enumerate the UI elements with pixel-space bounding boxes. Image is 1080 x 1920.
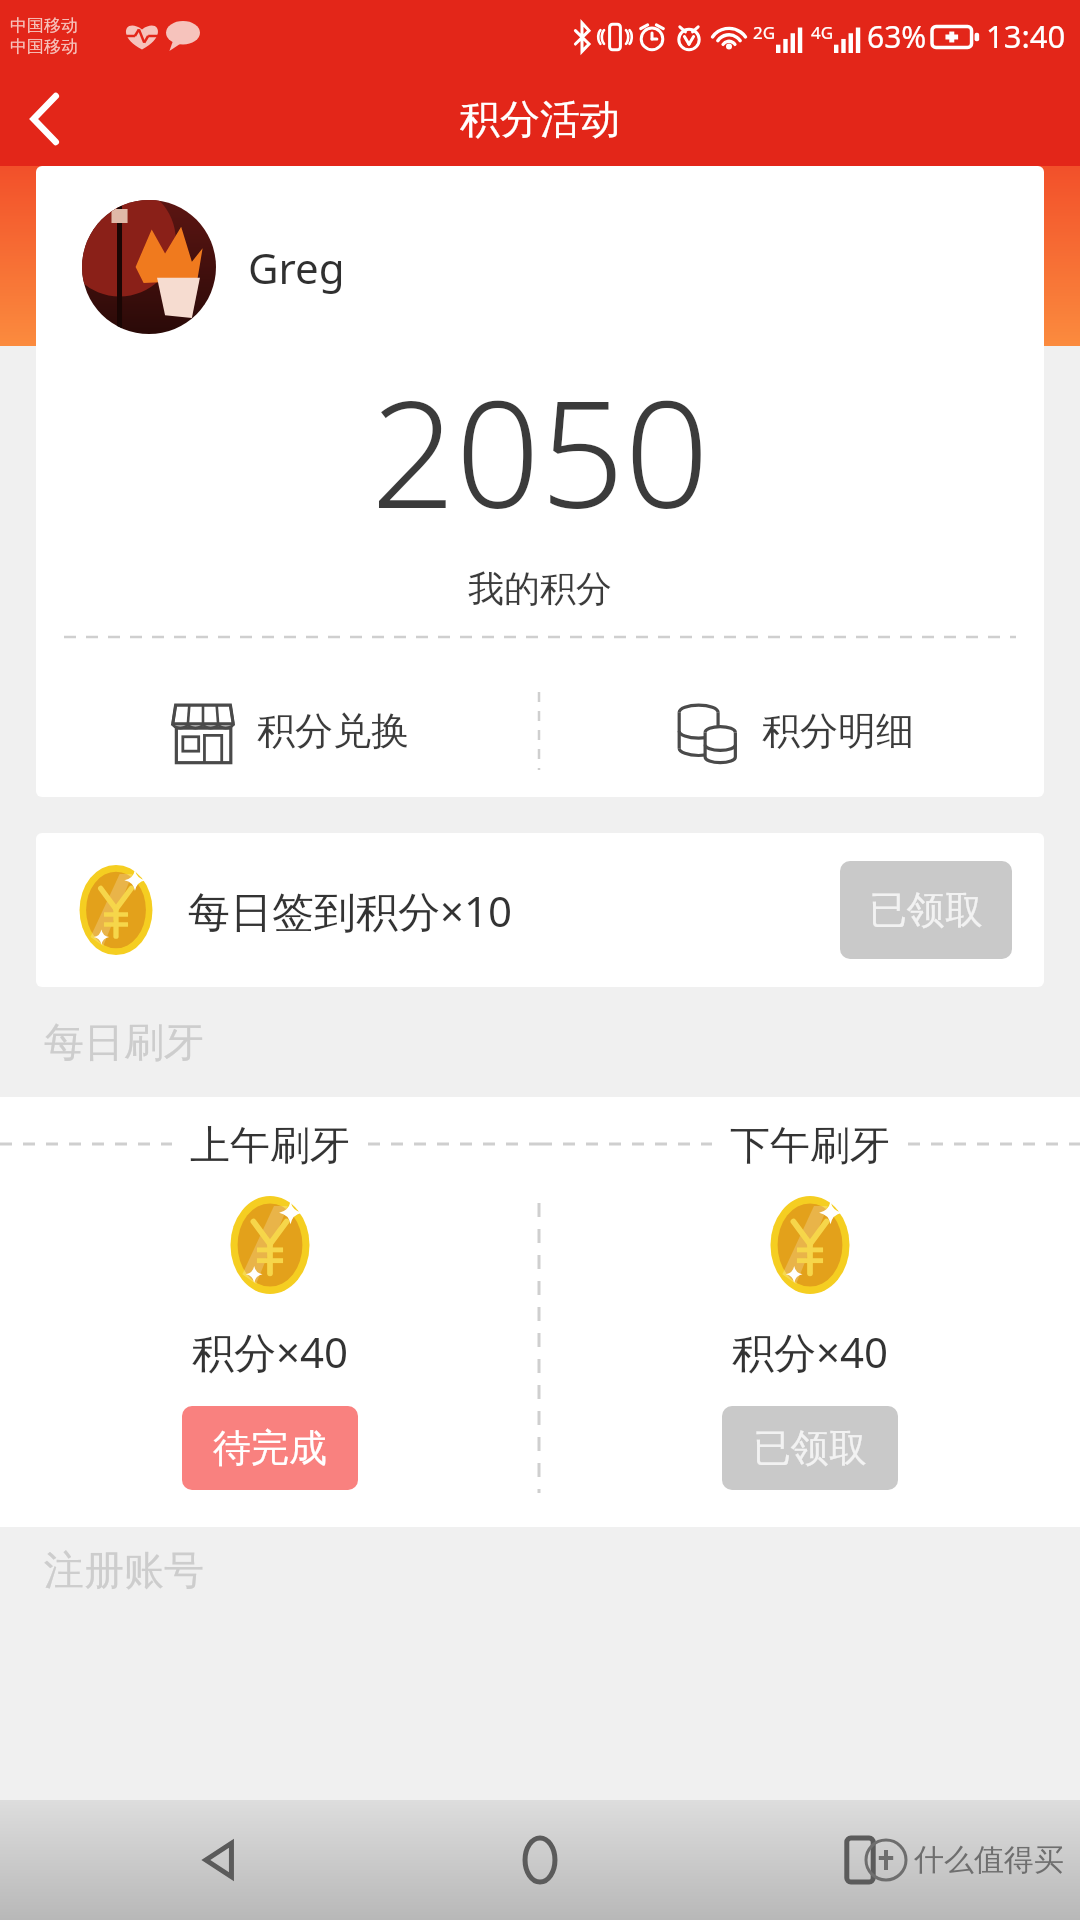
staticText: 积分兑换 bbox=[257, 707, 409, 755]
button[interactable]: 待完成 bbox=[182, 1406, 358, 1490]
staticText: 2G bbox=[753, 21, 776, 44]
staticText: 我的积分 bbox=[36, 566, 1044, 611]
button[interactable]: Back bbox=[160, 1800, 280, 1920]
staticText: 积分活动 bbox=[460, 94, 620, 144]
staticText: 已领取 bbox=[753, 1424, 867, 1472]
staticText: 63% bbox=[867, 16, 927, 57]
staticText: 上午刷牙 bbox=[190, 1120, 350, 1170]
staticText: 待完成 bbox=[213, 1424, 327, 1472]
button[interactable]: 积分明细 bbox=[541, 665, 1044, 797]
staticText: 中国移动 bbox=[10, 15, 78, 36]
staticText: 2050 bbox=[36, 350, 1044, 552]
staticText: 积分明细 bbox=[762, 707, 914, 755]
button[interactable]: Back bbox=[0, 74, 90, 164]
button[interactable]: 已领取 bbox=[722, 1406, 898, 1490]
button[interactable]: Recent apps bbox=[800, 1800, 920, 1920]
staticText: 每日刷牙 bbox=[44, 1017, 204, 1067]
staticText: 已领取 bbox=[869, 886, 983, 934]
staticText: 13:40 bbox=[986, 15, 1066, 57]
button[interactable]: 已领取 bbox=[840, 861, 1012, 959]
staticText: 中国移动 bbox=[10, 36, 78, 57]
staticText: 注册账号 bbox=[44, 1545, 204, 1595]
staticText: 每日签到积分×10 bbox=[188, 882, 513, 939]
staticText: Greg bbox=[248, 239, 345, 296]
staticText: 积分×40 bbox=[192, 1323, 349, 1380]
staticText: 什么值得买 bbox=[914, 1841, 1064, 1879]
button[interactable]: Home bbox=[480, 1800, 600, 1920]
button[interactable]: 积分兑换 bbox=[36, 665, 539, 797]
staticText: 4G bbox=[811, 21, 834, 44]
staticText: 积分×40 bbox=[732, 1323, 889, 1380]
staticText: 下午刷牙 bbox=[730, 1120, 890, 1170]
